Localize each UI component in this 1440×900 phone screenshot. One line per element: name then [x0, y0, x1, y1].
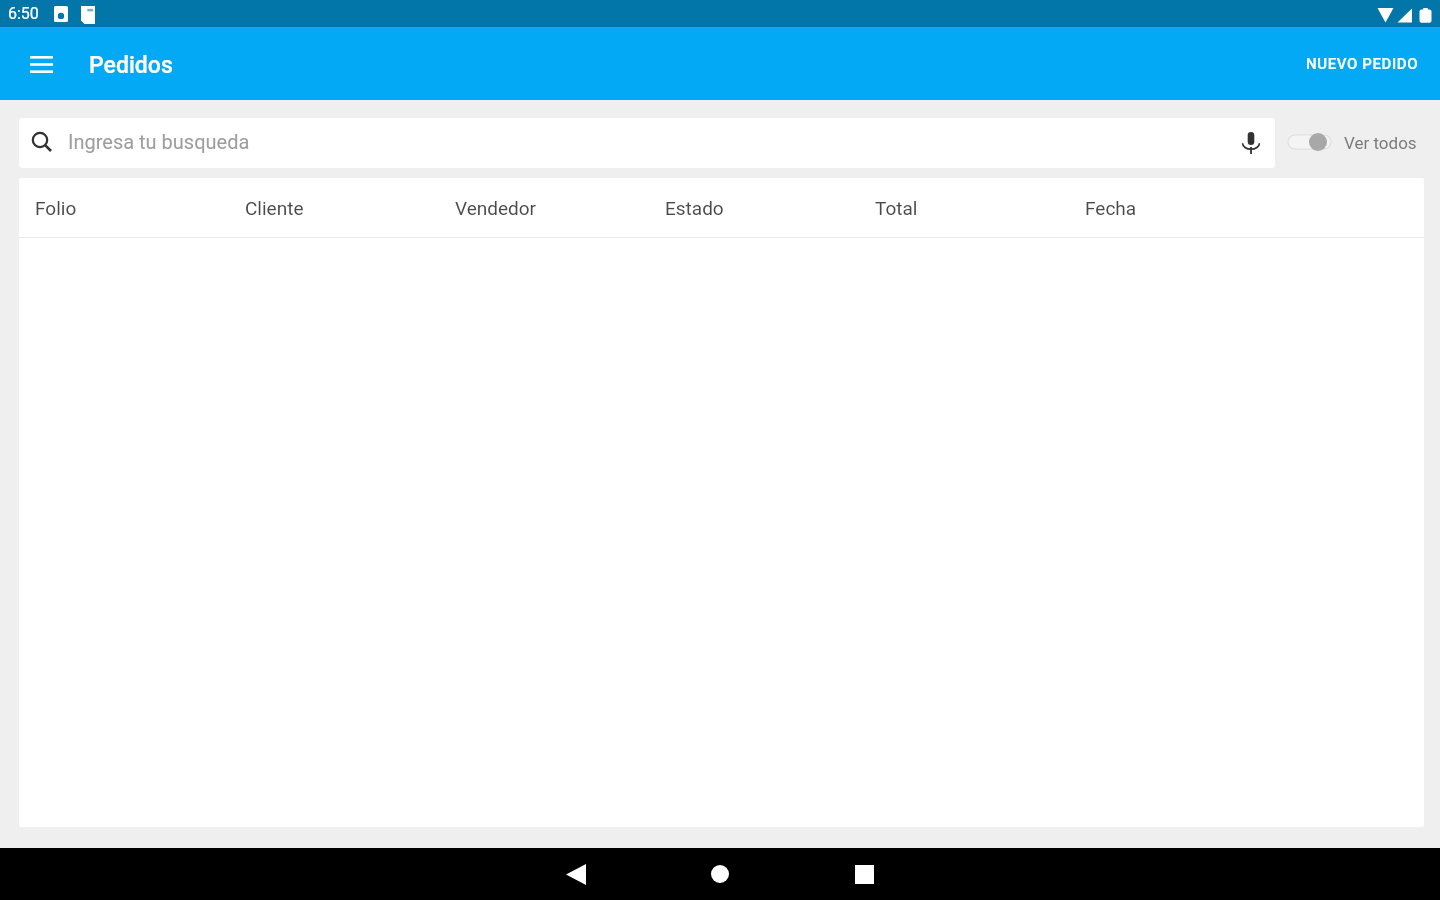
- staticText: Estado: [665, 197, 724, 219]
- staticText: 6:50: [8, 4, 39, 23]
- staticText: Ver todos: [1344, 133, 1417, 153]
- staticText: Total: [875, 197, 918, 219]
- button[interactable]: Open navigation menu: [17, 40, 65, 88]
- staticText: NUEVO PEDIDO: [1306, 55, 1419, 73]
- button[interactable]: Home: [684, 848, 756, 900]
- staticText: Ingresa tu busqueda: [68, 130, 250, 153]
- staticText: Folio: [35, 197, 77, 219]
- button[interactable]: Ingresa tu busqueda: [19, 118, 1275, 168]
- staticText: Cliente: [245, 197, 304, 219]
- button[interactable]: NUEVO PEDIDO: [1285, 39, 1440, 89]
- staticText: Fecha: [1085, 197, 1137, 219]
- button[interactable]: Ver todos toggle: [1288, 130, 1332, 156]
- staticText: Vendedor: [455, 197, 537, 219]
- button[interactable]: Back: [540, 848, 612, 900]
- staticText: Pedidos: [89, 52, 173, 79]
- button[interactable]: Recent apps: [828, 848, 900, 900]
- button[interactable]: Voice search: [1234, 126, 1268, 160]
